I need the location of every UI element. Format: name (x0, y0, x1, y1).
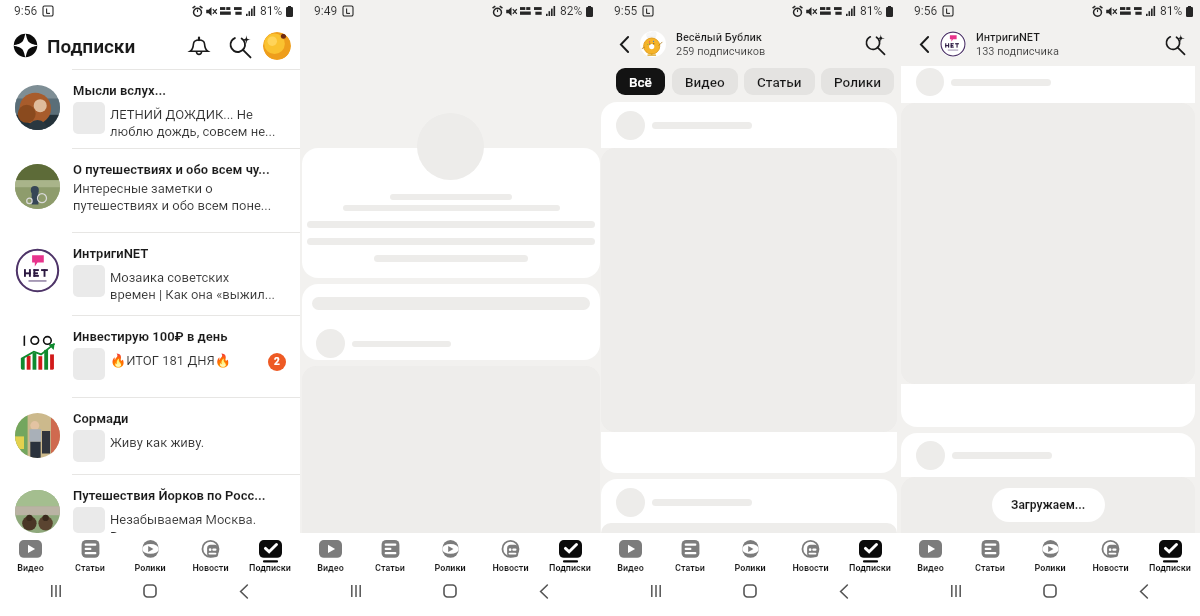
staticText: Статьи (75, 563, 105, 574)
button[interactable]: Ролики (120, 533, 180, 578)
button[interactable]: Back (1131, 578, 1157, 604)
button[interactable]: Back (913, 33, 935, 55)
button[interactable]: Статьи (744, 68, 815, 95)
staticText: Весёлый Бублик (676, 31, 762, 44)
button[interactable]: Подписки (1140, 533, 1200, 578)
staticText: Видео (917, 563, 944, 574)
staticText: Путешествия Йорков по Росс... (73, 488, 266, 503)
staticText: Новости (192, 563, 229, 574)
staticText: 81% (1160, 4, 1183, 18)
staticText: Инвестирую 100₽ в день (73, 329, 228, 344)
staticText: ИнтригиNET (73, 246, 149, 261)
button[interactable]: Search (1162, 31, 1188, 57)
staticText: ИнтригиNET (976, 31, 1040, 44)
staticText: Новости (1092, 563, 1129, 574)
button[interactable]: Всё (616, 68, 665, 95)
button[interactable]: Инвестирую 100₽ в день (0, 316, 300, 397)
staticText: Ролики (1034, 563, 1066, 574)
staticText: Всё (629, 74, 652, 90)
button[interactable]: Profile (263, 32, 291, 60)
button[interactable]: Видео (600, 533, 660, 578)
staticText: Интересные заметки о путешествиях и обо … (73, 181, 296, 214)
staticText: 133 подписчика (976, 45, 1059, 58)
staticText: 81% (260, 4, 283, 18)
button[interactable]: Подписки (540, 533, 600, 578)
button[interactable]: Ролики (420, 533, 480, 578)
staticText: ЛЕТНИЙ ДОЖДИК... Не люблю дождь, совсем … (110, 107, 296, 140)
button[interactable]: Home (137, 578, 163, 604)
button[interactable]: Ролики (821, 68, 894, 95)
staticText: 259 подписчиков (676, 45, 766, 58)
button[interactable]: Ролики (1020, 533, 1080, 578)
button[interactable]: Back (613, 33, 635, 55)
staticText: Подписки (47, 35, 136, 57)
button[interactable]: ИнтригиNET (0, 233, 300, 315)
button[interactable]: Загружаем... (992, 488, 1105, 522)
staticText: Ролики (834, 74, 881, 90)
staticText: Подписки (849, 563, 891, 574)
button[interactable]: Search (225, 31, 255, 61)
button[interactable]: Новости (180, 533, 240, 578)
button[interactable]: Search (862, 31, 888, 57)
staticText: Видео (617, 563, 644, 574)
staticText: 9:49 (314, 4, 338, 18)
button[interactable]: Путешествия Йорков по Росс... (0, 475, 300, 533)
staticText: Загружаем... (1011, 498, 1086, 512)
button[interactable]: Статьи (960, 533, 1020, 578)
button[interactable]: Channel avatar (640, 31, 666, 57)
button[interactable]: Back (531, 578, 557, 604)
staticText: Статьи (757, 74, 802, 90)
button[interactable]: Видео (672, 68, 738, 95)
staticText: Ролики (434, 563, 466, 574)
button[interactable]: Статьи (60, 533, 120, 578)
staticText: 81% (860, 4, 883, 18)
staticText: Подписки (249, 563, 291, 574)
staticText: Мозаика советских времен | Как она «выжи… (110, 270, 296, 303)
staticText: Сормади (73, 411, 129, 426)
staticText: Статьи (375, 563, 405, 574)
button[interactable]: Recents (43, 578, 69, 604)
button[interactable]: Home (737, 578, 763, 604)
staticText: Новости (492, 563, 529, 574)
button[interactable]: Мысли вслух... (0, 70, 300, 148)
staticText: Ролики (134, 563, 166, 574)
button[interactable]: Back (831, 578, 857, 604)
staticText: Незабываемая Москва. Величественные лике… (110, 512, 296, 533)
button[interactable]: Видео (900, 533, 960, 578)
staticText: Видео (17, 563, 44, 574)
staticText: Живу как живу. (110, 435, 296, 450)
button[interactable]: Статьи (660, 533, 720, 578)
staticText: 2 (274, 356, 280, 368)
button[interactable]: Ролики (720, 533, 780, 578)
button[interactable]: Сормади (0, 398, 300, 474)
button[interactable]: Back (231, 578, 257, 604)
button[interactable]: Подписки (240, 533, 300, 578)
staticText: Подписки (549, 563, 591, 574)
button[interactable]: Видео (300, 533, 360, 578)
button[interactable]: Новости (780, 533, 840, 578)
staticText: Мысли вслух... (73, 83, 166, 98)
button[interactable]: Channel avatar (940, 31, 966, 57)
staticText: Подписки (1149, 563, 1191, 574)
button[interactable]: Статьи (360, 533, 420, 578)
button[interactable]: Recents (343, 578, 369, 604)
button[interactable]: Новости (480, 533, 540, 578)
staticText: Статьи (675, 563, 705, 574)
staticText: О путешествиях и обо всем чу... (73, 162, 270, 177)
staticText: Новости (792, 563, 829, 574)
staticText: 9:56 (14, 4, 38, 18)
button[interactable]: Recents (943, 578, 969, 604)
button[interactable]: Home (1037, 578, 1063, 604)
staticText: 9:55 (614, 4, 638, 18)
staticText: 9:56 (914, 4, 938, 18)
staticText: Статьи (975, 563, 1005, 574)
button[interactable]: Новости (1080, 533, 1140, 578)
button[interactable]: Zen (13, 33, 38, 58)
button[interactable]: Notifications (184, 31, 214, 61)
staticText: Ролики (734, 563, 766, 574)
button[interactable]: О путешествиях и обо всем чу... (0, 149, 300, 232)
button[interactable]: Home (437, 578, 463, 604)
button[interactable]: Recents (643, 578, 669, 604)
button[interactable]: Видео (0, 533, 60, 578)
button[interactable]: Подписки (840, 533, 900, 578)
